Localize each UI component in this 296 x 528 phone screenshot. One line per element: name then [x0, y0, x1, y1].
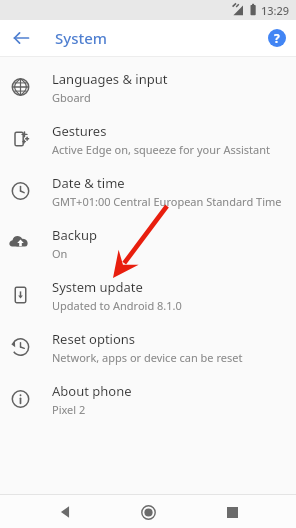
staticText: Gboard — [52, 90, 91, 105]
button[interactable]: Help — [264, 25, 290, 51]
staticText: 13:29 — [261, 3, 290, 18]
button[interactable]: System update — [0, 269, 296, 321]
button[interactable]: About phone — [0, 373, 296, 425]
button[interactable]: Home — [132, 496, 164, 528]
button[interactable]: Gestures — [0, 113, 296, 165]
staticText: System update — [52, 278, 143, 296]
staticText: Date & time — [52, 174, 125, 192]
staticText: Backup — [52, 226, 97, 244]
staticText: Active Edge on, squeeze for your Assista… — [52, 142, 270, 157]
button[interactable]: Reset options — [0, 321, 296, 373]
button[interactable]: Back — [8, 25, 34, 51]
staticText: System — [55, 28, 108, 48]
staticText: Reset options — [52, 330, 136, 348]
staticText: On — [52, 246, 68, 261]
button[interactable]: Languages & input — [0, 61, 296, 113]
button[interactable]: Date & time — [0, 165, 296, 217]
staticText: Pixel 2 — [52, 402, 86, 417]
staticText: Gestures — [52, 122, 107, 140]
staticText: Network, apps or device can be reset — [52, 350, 243, 365]
staticText: ? — [274, 30, 280, 46]
staticText: Languages & input — [52, 70, 168, 88]
button[interactable]: Backup — [0, 217, 296, 269]
staticText: Updated to Android 8.1.0 — [52, 298, 182, 313]
staticText: About phone — [52, 382, 132, 400]
button[interactable]: Back — [50, 496, 82, 528]
staticText: GMT+01:00 Central European Standard Time — [52, 194, 282, 209]
button[interactable]: Recent apps — [216, 496, 248, 528]
